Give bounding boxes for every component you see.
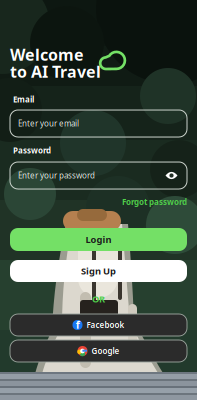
button[interactable]: Login — [10, 228, 187, 251]
staticText: OR — [92, 293, 105, 305]
button[interactable]: Forgot password — [107, 196, 187, 208]
button[interactable]: f — [10, 314, 187, 336]
staticText: Login — [85, 233, 111, 246]
staticText: Forgot password — [122, 197, 187, 207]
staticText: Welcome — [10, 44, 84, 65]
staticText: Sign Up — [81, 265, 116, 277]
button[interactable]: Google — [10, 340, 187, 362]
staticText: Password — [13, 145, 51, 156]
staticText: Email — [13, 94, 34, 105]
staticText: Enter your password — [18, 170, 95, 181]
staticText: Facebook — [86, 320, 124, 330]
staticText: to AI Travel — [10, 61, 101, 82]
staticText: Enter your email — [18, 118, 79, 129]
button[interactable]: Sign Up — [10, 260, 187, 282]
staticText: Google — [91, 346, 119, 356]
staticText: f — [76, 317, 80, 332]
